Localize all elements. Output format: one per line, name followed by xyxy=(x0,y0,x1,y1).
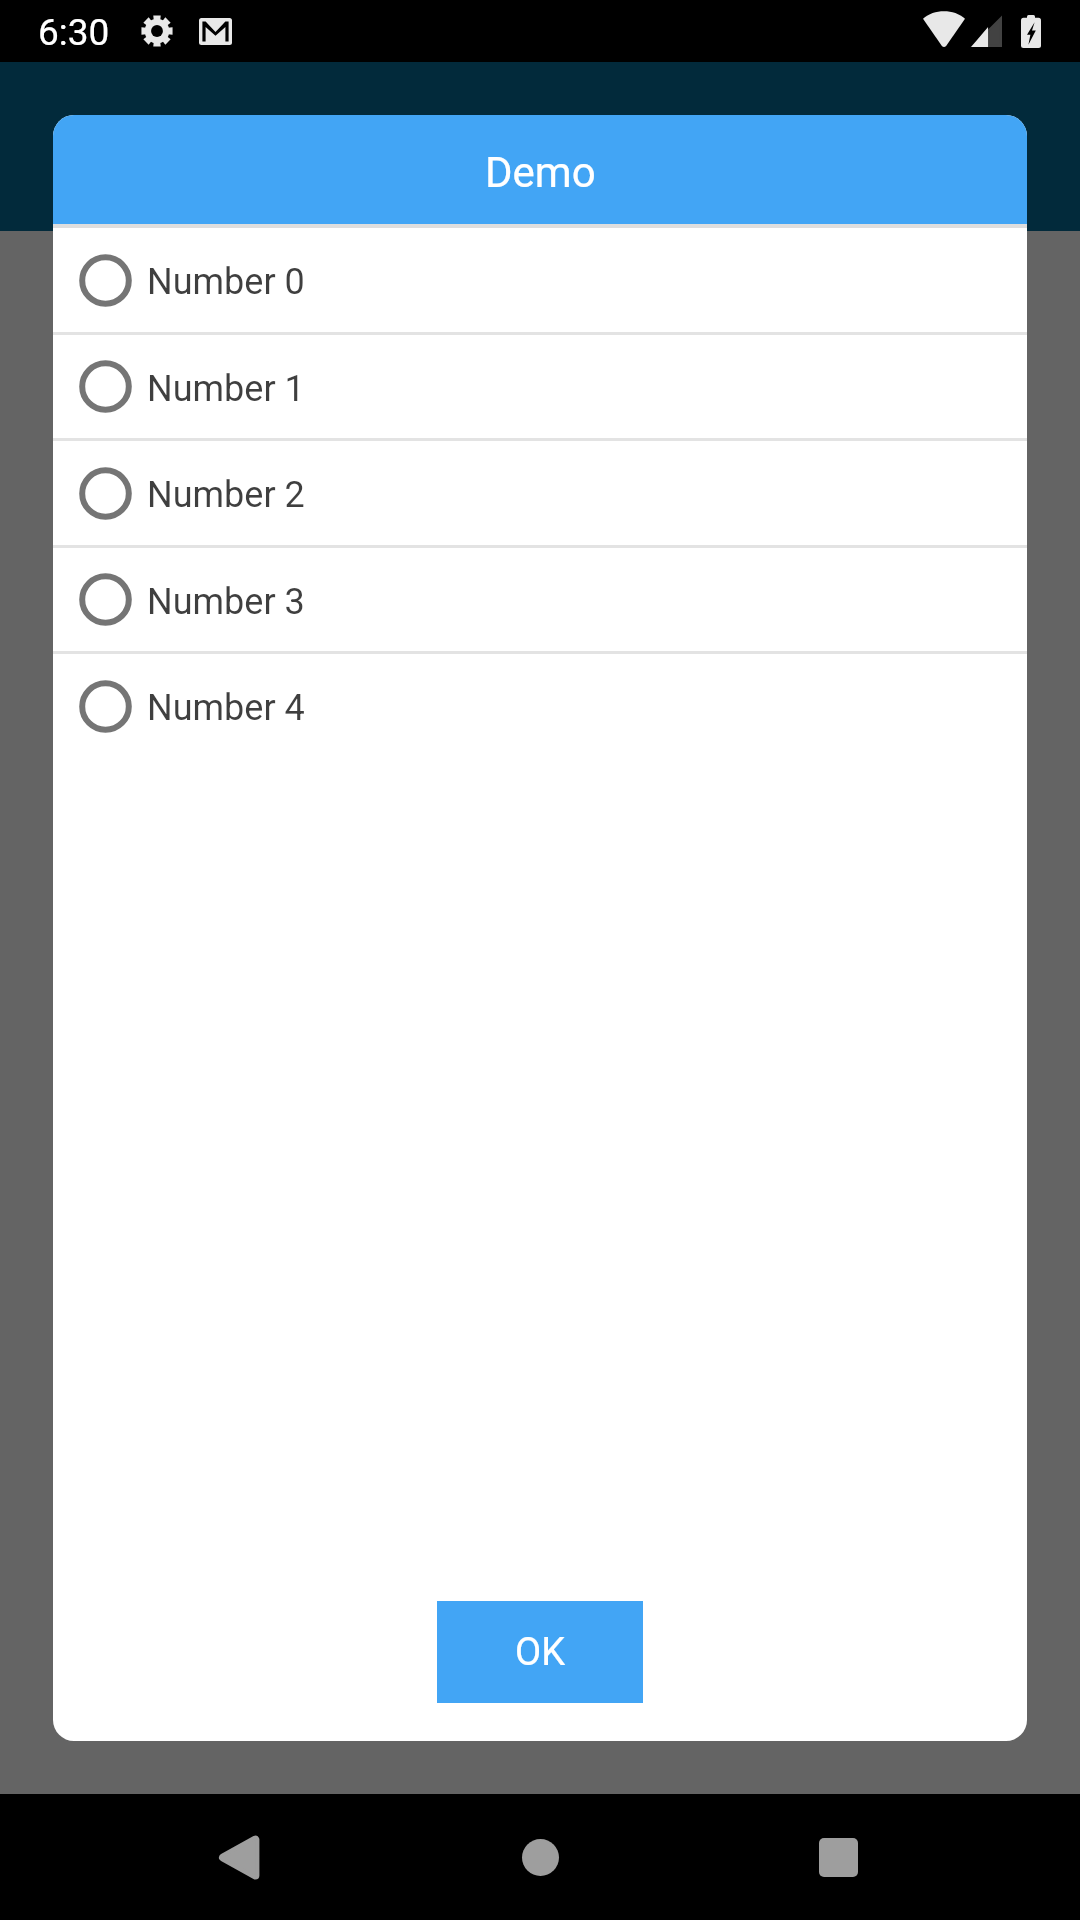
button[interactable]: Number 2 xyxy=(53,441,1027,545)
staticText: 6:30 xyxy=(38,11,110,54)
staticText: Number 2 xyxy=(147,474,305,516)
staticText: Number 3 xyxy=(147,581,305,623)
staticText: Demo xyxy=(485,148,596,197)
button[interactable]: Recent apps xyxy=(776,1795,900,1919)
staticText: Number 0 xyxy=(147,261,305,303)
button[interactable]: Number 3 xyxy=(53,548,1027,651)
button[interactable]: OK xyxy=(437,1601,643,1703)
staticText: OK xyxy=(515,1630,565,1675)
button[interactable]: Number 1 xyxy=(53,335,1027,438)
staticText: Number 4 xyxy=(147,687,305,729)
button[interactable]: Back xyxy=(176,1795,300,1919)
button[interactable]: Home xyxy=(478,1795,602,1919)
staticText: Number 1 xyxy=(147,368,305,410)
button[interactable]: Number 0 xyxy=(53,228,1027,332)
button[interactable]: Number 4 xyxy=(53,654,1027,758)
